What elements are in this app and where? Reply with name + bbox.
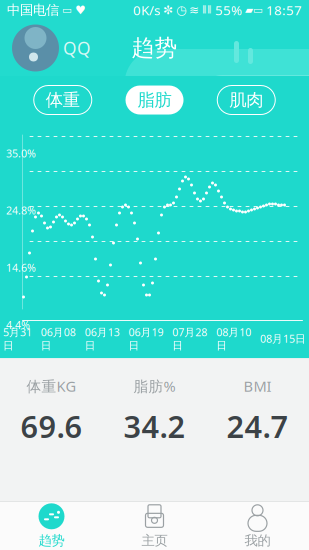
staticText: 体重KG <box>26 376 76 396</box>
staticText: 脂肪% <box>133 376 175 396</box>
staticText: BMI <box>243 376 271 396</box>
staticText: QQ <box>63 36 91 59</box>
button[interactable]: 肌肉 <box>217 85 275 114</box>
button[interactable]: 趋势 <box>0 502 103 550</box>
staticText: 体重 <box>46 89 80 111</box>
staticText: 趋势 <box>38 532 64 549</box>
staticText: 趋势 <box>131 34 177 62</box>
staticText: ◷ <box>176 3 186 17</box>
staticText: 24.8% <box>6 203 36 217</box>
staticText: ≋ <box>189 3 199 17</box>
button[interactable]: 个人头像 <box>12 24 91 71</box>
staticText: 中国电信 <box>7 2 59 18</box>
staticText: 08月15日 <box>260 332 306 346</box>
staticText: 34.2 <box>123 406 185 446</box>
staticText: ▰▭ <box>245 4 263 16</box>
staticText: ▭ <box>62 4 72 16</box>
staticText: 14.6% <box>6 260 36 275</box>
staticText: 4.4% <box>6 318 30 332</box>
staticText: ✼ <box>163 3 173 17</box>
staticText: 脂肪 <box>137 89 171 111</box>
staticText: 5月31日 <box>3 325 32 352</box>
staticText: 0K/s <box>133 1 160 19</box>
staticText: 18:57 <box>266 1 302 19</box>
staticText: 07月28日 <box>172 325 207 352</box>
staticText: 06月13日 <box>85 325 120 352</box>
staticText: 24.7 <box>226 406 288 446</box>
staticText: 肌肉 <box>229 89 263 111</box>
staticText: 08月10日 <box>216 325 251 352</box>
button[interactable]: 我的 <box>206 502 309 550</box>
staticText: 主页 <box>141 532 167 549</box>
staticText: 55% <box>215 1 242 19</box>
staticText: 我的 <box>244 532 270 549</box>
staticText: 69.6 <box>20 406 82 446</box>
staticText: ♥ <box>75 3 86 17</box>
staticText: 06月19日 <box>128 325 163 352</box>
staticText: 35.0% <box>6 146 36 160</box>
staticText: 06月08日 <box>41 325 76 352</box>
button[interactable]: 体重 <box>34 85 92 114</box>
staticText: ⦀⦀ <box>202 5 212 15</box>
button[interactable]: 主页 <box>103 502 206 550</box>
button[interactable]: 脂肪 <box>125 85 183 114</box>
